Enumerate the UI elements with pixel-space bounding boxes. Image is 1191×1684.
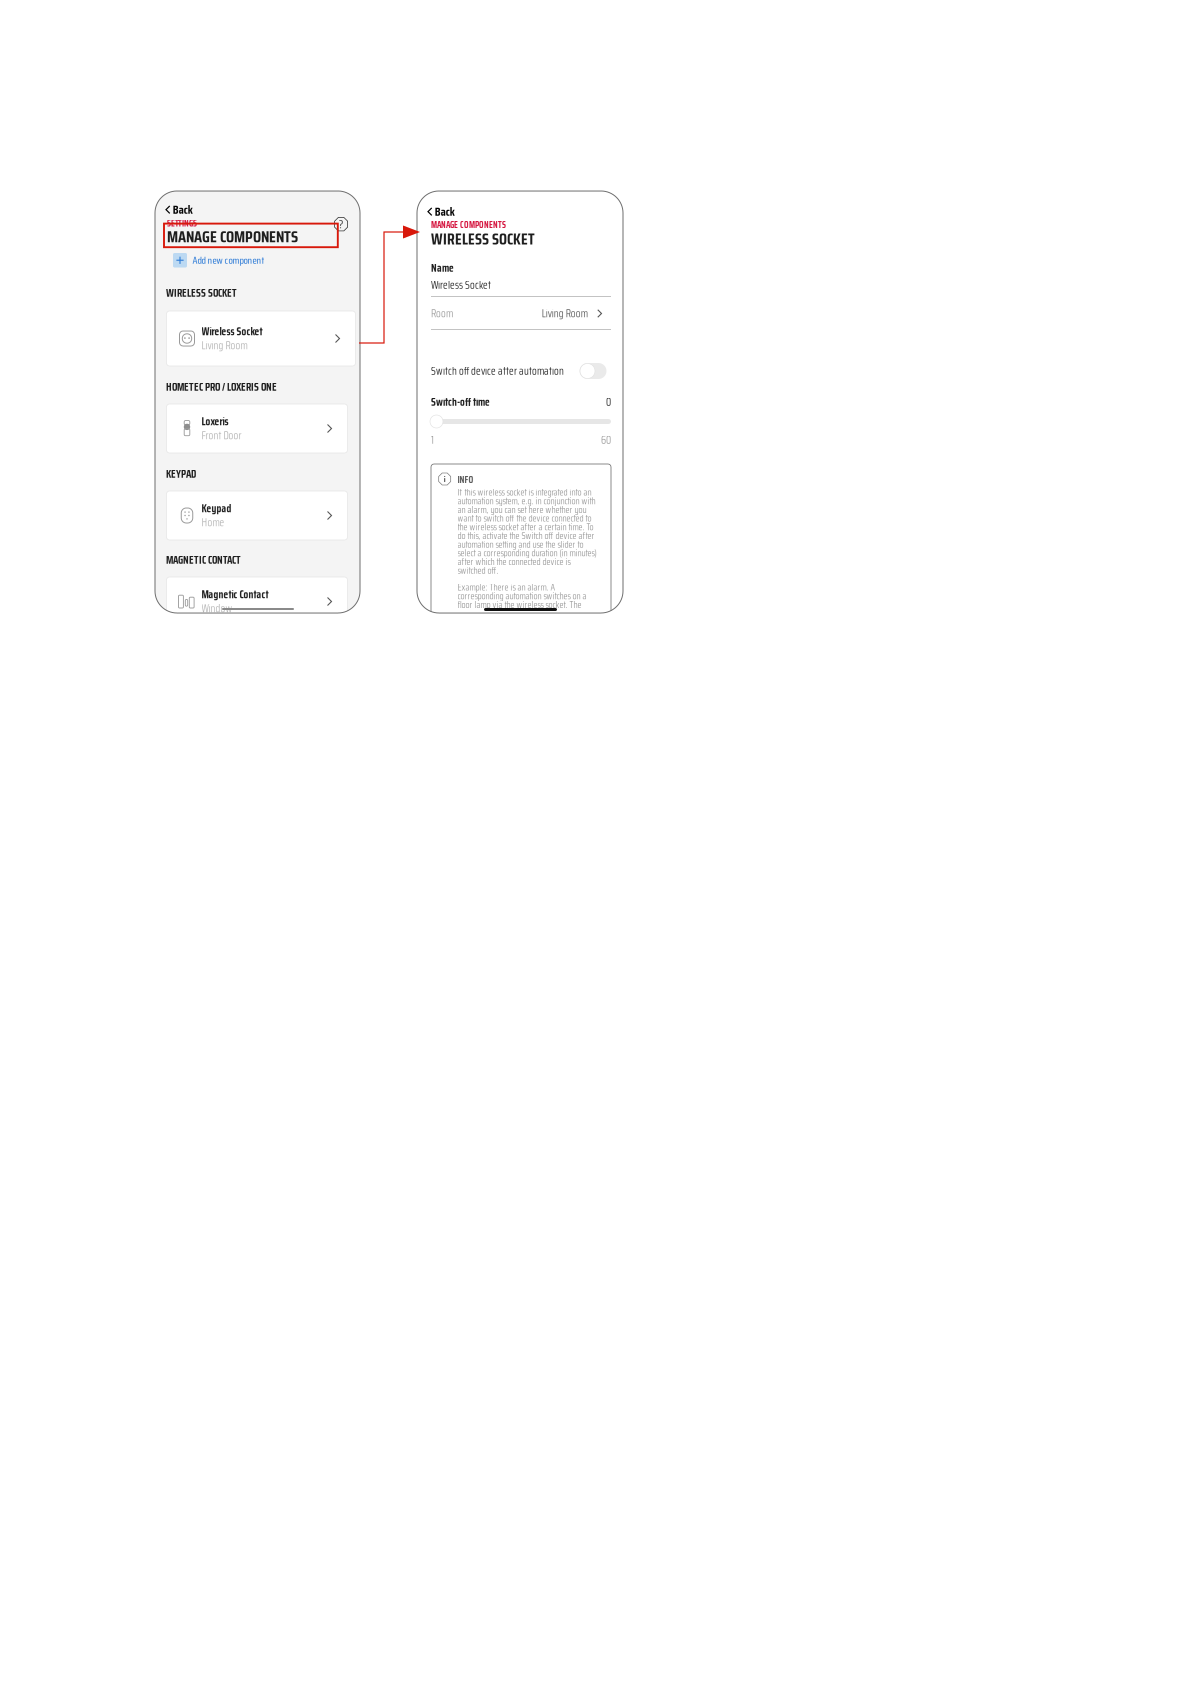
staticText: HOMETEC PRO / LOXERIS ONE — [166, 381, 277, 393]
staticText: 0 — [606, 396, 611, 408]
staticText: Living Room — [201, 339, 247, 352]
staticText: MANAGE COMPONENTS — [167, 227, 298, 246]
button[interactable]: Switch off device after automation — [579, 363, 611, 379]
staticText: 60 — [601, 434, 611, 446]
button[interactable]: Magnetic Contact — [166, 577, 347, 626]
staticText: Window — [201, 602, 232, 615]
button[interactable]: Help — [335, 217, 348, 231]
staticText: WIRELESS SOCKET — [431, 230, 535, 248]
staticText: MAGNETIC CONTACT — [166, 554, 241, 566]
staticText: WIRELESS SOCKET — [166, 287, 237, 299]
staticText: SETTINGS — [167, 218, 197, 228]
staticText: Switch-off time — [431, 396, 490, 408]
button[interactable]: Add new component — [155, 250, 272, 270]
staticText: Living Room — [542, 307, 588, 320]
staticText: If this wireless socket is integrated in… — [457, 488, 596, 575]
staticText: ? — [339, 215, 343, 234]
staticText: Back — [435, 205, 455, 218]
staticText: 1 — [431, 434, 434, 446]
button[interactable]: Back — [417, 200, 461, 223]
staticText: Example: There is an alarm. A correspond… — [457, 583, 586, 609]
staticText: Back — [173, 203, 193, 216]
staticText: Room — [431, 307, 453, 320]
button[interactable]: Loxeris — [166, 404, 347, 453]
staticText: KEYPAD — [166, 468, 196, 480]
staticText: Keypad — [201, 502, 231, 514]
staticText: Add new component — [192, 255, 264, 266]
staticText: Front Door — [201, 429, 241, 442]
button[interactable]: Wireless Socket — [166, 311, 355, 366]
staticText: Switch off device after automation — [431, 365, 564, 377]
staticText: MANAGE COMPONENTS — [431, 220, 506, 230]
button[interactable]: Room — [431, 297, 611, 329]
staticText: INFO — [457, 474, 473, 485]
staticText: Wireless Socket — [201, 325, 262, 337]
staticText: Name — [431, 262, 454, 274]
staticText: Wireless Socket — [431, 279, 491, 291]
button[interactable]: Back — [155, 198, 199, 221]
staticText: Loxeris — [201, 415, 228, 427]
staticText: Magnetic Contact — [201, 588, 268, 600]
staticText: Home — [201, 516, 224, 529]
button[interactable]: Keypad — [166, 491, 347, 540]
